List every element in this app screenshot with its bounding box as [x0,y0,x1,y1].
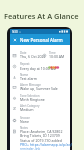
staticText: New Personal Alarm [20,37,63,43]
staticText: Tone Selection [20,94,40,98]
staticText: Notes [20,126,29,130]
button[interactable]: reminder-link [20,147,41,150]
staticText: Alarm Message [20,83,41,87]
staticText: Name [20,73,29,77]
staticText: Wake up, Summer Sale [20,86,58,91]
staticText: Alert Category [20,104,40,108]
staticText: reminder-link [20,147,41,150]
staticText: Place: Anaheim, CA 92802 Bring Tickets, … [20,129,63,138]
staticText: PRO+ https://alarmapp.io/p/aq56 [20,142,72,147]
staticText: None [20,119,29,124]
button[interactable]: PRO+ https://alarmapp.io/p/aq56 [20,142,72,147]
button[interactable]: Close [10,34,70,45]
staticText: Medium [20,107,34,112]
staticText: Thu, 6 Oct 2022 [20,54,46,59]
staticText: Repeat [20,62,30,66]
staticText: 9:30 [12,30,18,34]
staticText: Time [49,51,56,55]
staticText: Every day at 10:00 AM [20,66,57,71]
staticText: 10:00 AM [49,54,65,59]
staticText: Mirth Ringtone [20,97,45,102]
staticText: Date [20,51,27,55]
other: Close [13,38,17,42]
staticText: Test alarm [20,76,38,81]
staticText: Snooze [20,116,30,120]
staticText: Features At A Glance [4,11,79,21]
staticText: Status of 2019-730 added [20,138,62,143]
